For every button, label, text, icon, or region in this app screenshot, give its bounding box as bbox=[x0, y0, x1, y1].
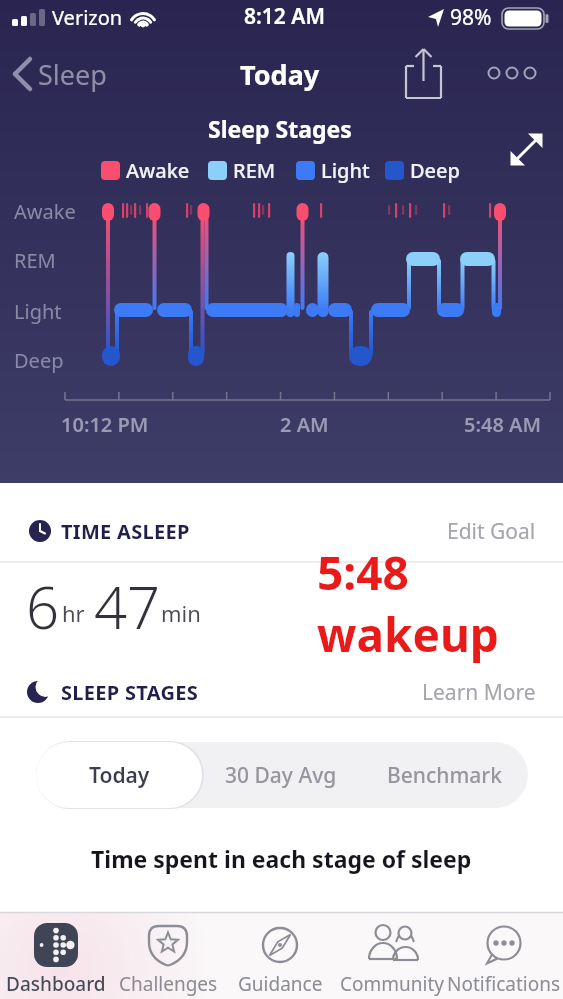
staticText: Light bbox=[14, 298, 62, 325]
button[interactable] bbox=[482, 55, 544, 91]
staticText: 5:48 AM bbox=[464, 411, 542, 438]
staticText: TIME ASLEEP bbox=[61, 518, 190, 545]
button[interactable] bbox=[202, 742, 360, 808]
staticText: Dashboard bbox=[6, 971, 106, 997]
staticText: 10:12 PM bbox=[61, 411, 149, 438]
staticText: Awake bbox=[14, 198, 76, 225]
staticText: 6 bbox=[26, 567, 60, 637]
staticText: Learn More bbox=[422, 678, 536, 707]
staticText: Guidance bbox=[238, 971, 323, 997]
staticText: 47 bbox=[94, 567, 161, 637]
staticText: Challenges bbox=[119, 971, 218, 997]
staticText: Today bbox=[240, 56, 320, 93]
staticText: REM bbox=[14, 247, 56, 274]
button[interactable] bbox=[4, 916, 108, 999]
staticText: 98% bbox=[450, 3, 492, 32]
button[interactable] bbox=[116, 916, 220, 999]
staticText: Verizon bbox=[52, 4, 123, 31]
button[interactable] bbox=[8, 52, 128, 96]
staticText: SLEEP STAGES bbox=[61, 679, 199, 706]
staticText: Time spent in each stage of sleep bbox=[91, 843, 472, 874]
button[interactable] bbox=[360, 742, 528, 808]
staticText: 5:48 bbox=[317, 541, 409, 604]
staticText: Edit Goal bbox=[447, 517, 536, 546]
staticText: Light bbox=[321, 157, 370, 184]
staticText: Community bbox=[340, 971, 444, 997]
staticText: Benchmark bbox=[387, 761, 502, 790]
staticText: 8:12 AM bbox=[244, 2, 325, 31]
staticText: 2 AM bbox=[280, 411, 329, 438]
button[interactable] bbox=[340, 916, 444, 999]
staticText: Today bbox=[89, 761, 150, 790]
button[interactable] bbox=[452, 916, 556, 999]
staticText: min bbox=[161, 598, 201, 628]
button[interactable] bbox=[398, 48, 450, 104]
button[interactable] bbox=[228, 916, 332, 999]
staticText: wakeup bbox=[317, 603, 499, 666]
staticText: Notifications bbox=[447, 971, 561, 997]
button[interactable] bbox=[505, 128, 549, 172]
button[interactable] bbox=[36, 742, 202, 808]
staticText: Deep bbox=[14, 347, 64, 374]
staticText: Sleep bbox=[38, 56, 107, 93]
staticText: REM bbox=[233, 157, 276, 184]
button[interactable]: Learn More bbox=[236, 657, 536, 727]
button[interactable]: Edit Goal bbox=[236, 496, 536, 566]
staticText: Deep bbox=[410, 157, 460, 184]
staticText: Sleep Stages bbox=[208, 113, 352, 144]
staticText: Awake bbox=[126, 157, 190, 184]
staticText: 30 Day Avg bbox=[225, 761, 337, 790]
staticText: hr bbox=[62, 598, 85, 628]
